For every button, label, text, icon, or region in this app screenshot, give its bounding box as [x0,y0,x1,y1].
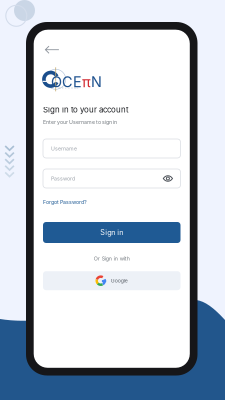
staticText: OCE [51,73,82,91]
button[interactable]: Sign in [43,222,180,243]
staticText: Google [111,278,128,284]
staticText: Username [51,145,77,152]
staticText: π [82,73,91,91]
staticText: N [91,73,102,91]
button[interactable]: Back [40,41,64,58]
staticText: Enter your Username to sign in [43,119,117,125]
staticText: Password [51,175,75,182]
staticText: Sign in [100,228,123,237]
staticText: Or Sign in with [94,255,130,262]
staticText: Forgot Password? [43,199,87,205]
staticText: W E L C O M E [58,86,79,90]
staticText: Sign in to your account [43,105,129,114]
button[interactable]: Forgot Password? [43,198,180,207]
button[interactable]: Google [43,271,180,290]
